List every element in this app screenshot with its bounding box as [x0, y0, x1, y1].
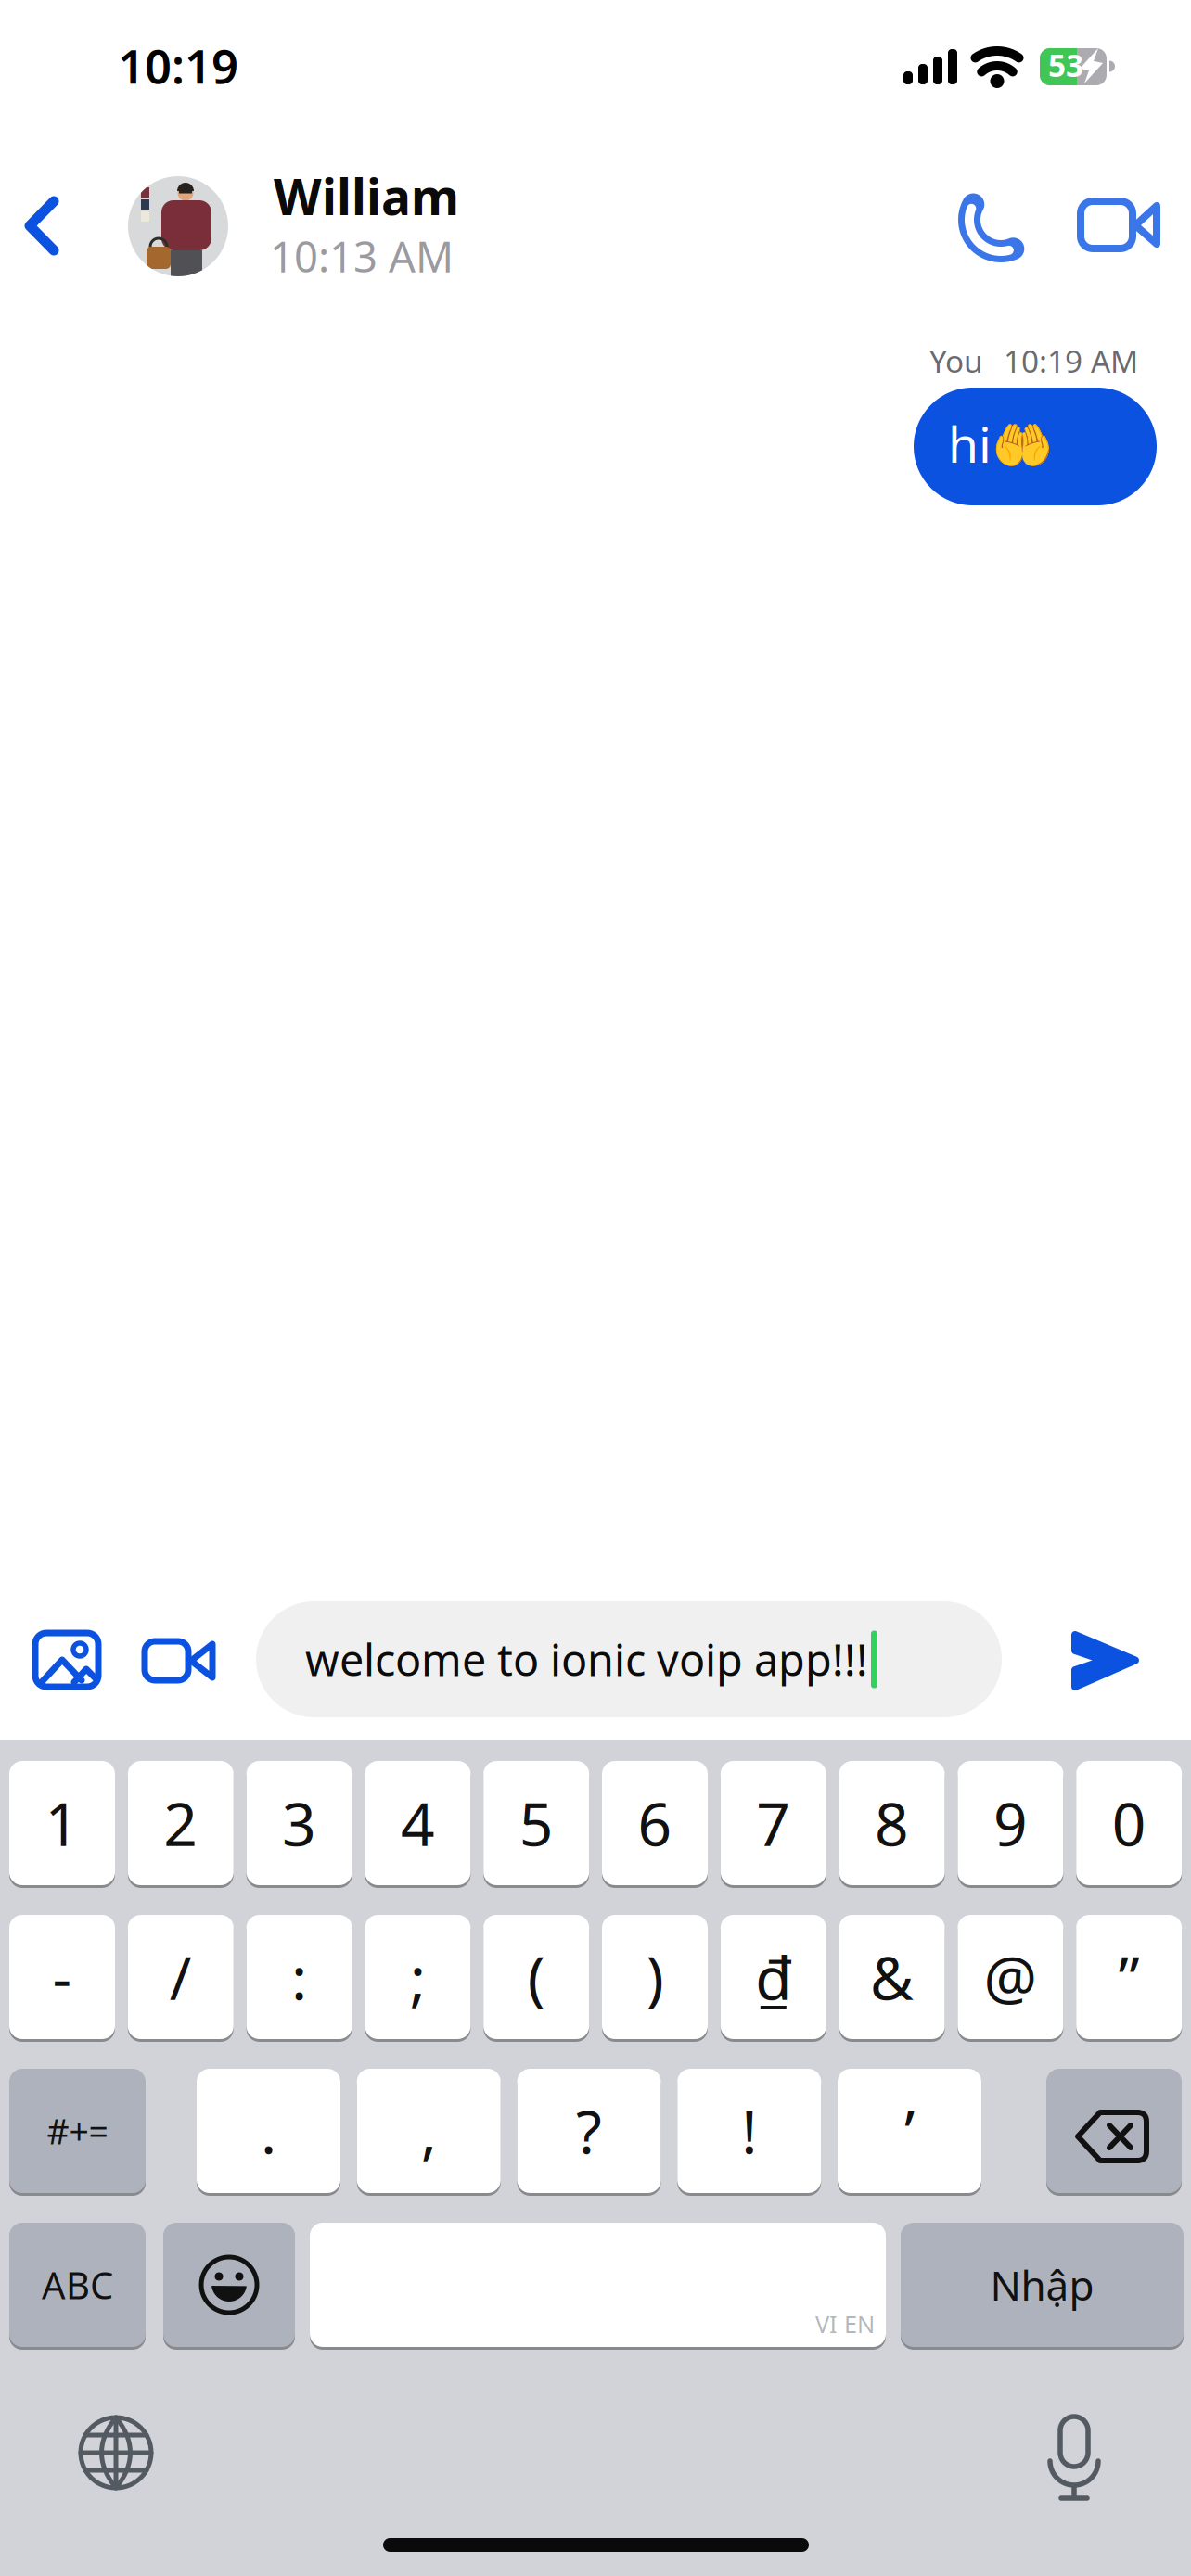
staticText: : [291, 1938, 307, 2016]
staticText: 10:13 AM [270, 228, 454, 284]
button[interactable]: ! [677, 2069, 821, 2193]
button[interactable]: 0 [1076, 1761, 1182, 1885]
button[interactable]: Attach Video [135, 1628, 224, 1693]
button[interactable]: 1 [9, 1761, 115, 1885]
staticText: Nhập [990, 2258, 1094, 2312]
staticText: @ [984, 1938, 1037, 2016]
button[interactable]: Space [310, 2223, 886, 2347]
button[interactable]: William, conversation details [128, 176, 499, 278]
button[interactable]: 5 [483, 1761, 589, 1885]
staticText: ’ [904, 2091, 915, 2170]
staticText: 6 [638, 1784, 672, 1862]
button[interactable]: ( [483, 1915, 589, 2039]
staticText: ? [576, 2091, 602, 2170]
button[interactable]: ) [602, 1915, 708, 2039]
staticText: & [870, 1938, 914, 2016]
staticText: 1 [45, 1784, 79, 1862]
staticText: ) [646, 1938, 664, 2016]
button[interactable]: Send [1057, 1621, 1154, 1701]
staticText: / [170, 1938, 192, 2016]
button[interactable]: Next Keyboard [74, 2411, 158, 2494]
button[interactable]: Dictation [1037, 2413, 1111, 2509]
button[interactable]: 6 [602, 1761, 708, 1885]
staticText: , [421, 2091, 437, 2170]
button[interactable]: Video Call [1074, 197, 1167, 254]
staticText: #+= [47, 2108, 108, 2154]
button[interactable]: Nhập [901, 2223, 1184, 2347]
staticText: - [52, 1938, 72, 2016]
staticText: đ [755, 1938, 791, 2016]
button[interactable]: ? [517, 2069, 661, 2193]
button[interactable]: Emoji [163, 2223, 295, 2347]
staticText: ( [528, 1938, 545, 2016]
button[interactable]: & [839, 1915, 945, 2039]
staticText: ! [741, 2091, 757, 2170]
staticText: 9 [993, 1784, 1028, 1862]
button[interactable]: ’ [838, 2069, 981, 2193]
staticText: ; [410, 1938, 426, 2016]
button[interactable]: : [246, 1915, 352, 2039]
staticText: VI EN [815, 2308, 875, 2340]
button[interactable]: Delete [1046, 2069, 1182, 2193]
button[interactable]: Message input [256, 1601, 1002, 1717]
staticText: 5 [519, 1784, 553, 1862]
button[interactable]: , [357, 2069, 501, 2193]
button[interactable]: 2 [128, 1761, 234, 1885]
button[interactable]: Attach Photo [22, 1621, 111, 1699]
staticText: ABC [42, 2260, 113, 2309]
button[interactable]: Call [951, 183, 1040, 272]
button[interactable]: đ [721, 1915, 826, 2039]
staticText: 10:19 [118, 34, 238, 97]
staticText: William [274, 163, 459, 229]
staticText: 0 [1112, 1784, 1146, 1862]
staticText: 8 [875, 1784, 909, 1862]
button[interactable]: 3 [246, 1761, 352, 1885]
staticText: 53 [1048, 45, 1083, 86]
button[interactable]: ABC [9, 2223, 146, 2347]
staticText: ” [1118, 1938, 1140, 2016]
staticText: 10:19 AM [1004, 340, 1138, 381]
button[interactable]: 7 [721, 1761, 826, 1885]
button[interactable]: ; [365, 1915, 471, 2039]
button[interactable]: 4 [365, 1761, 471, 1885]
staticText: You [929, 340, 983, 381]
button[interactable]: @ [958, 1915, 1063, 2039]
button[interactable]: - [9, 1915, 115, 2039]
button[interactable]: 9 [958, 1761, 1063, 1885]
button[interactable]: #+= [9, 2069, 146, 2193]
staticText: 7 [756, 1784, 791, 1862]
button[interactable]: 8 [839, 1761, 945, 1885]
staticText: 4 [401, 1784, 435, 1862]
button[interactable]: . [197, 2069, 340, 2193]
staticText: hi🤲 [948, 411, 1053, 476]
staticText: welcome to ionic voip app!!! [305, 1631, 868, 1688]
staticText: 3 [282, 1784, 316, 1862]
staticText: 2 [164, 1784, 198, 1862]
button[interactable]: ” [1076, 1915, 1182, 2039]
button[interactable]: Back [13, 188, 70, 264]
button[interactable]: / [128, 1915, 234, 2039]
staticText: . [261, 2091, 276, 2170]
